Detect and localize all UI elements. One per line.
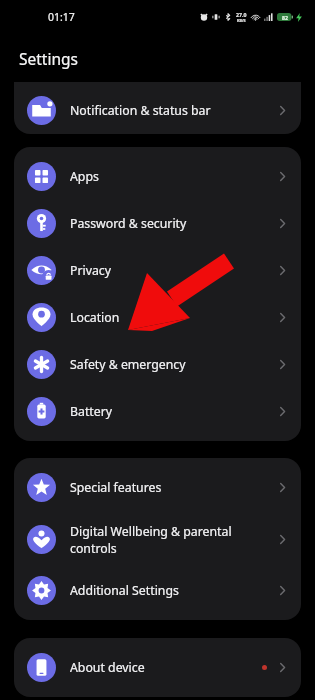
button[interactable]: Notification & status bar — [14, 87, 301, 134]
staticText: Battery — [70, 403, 113, 420]
staticText: 27.0 — [236, 11, 247, 18]
button[interactable]: Safety & emergency — [14, 341, 301, 388]
staticText: Safety & emergency — [70, 356, 186, 373]
button[interactable]: Location — [14, 294, 301, 341]
staticText: Digital Wellbeing & parental controls — [70, 523, 232, 556]
button[interactable]: Additional Settings — [14, 567, 301, 614]
staticText: 01:17 — [48, 10, 75, 24]
button[interactable]: Password & security — [14, 200, 301, 247]
button[interactable]: Privacy — [14, 247, 301, 294]
staticText: Settings — [19, 48, 78, 69]
button[interactable]: About device — [14, 644, 301, 691]
staticText: Special features — [70, 479, 162, 496]
staticText: Location — [70, 309, 120, 326]
staticText: Notification & status bar — [70, 102, 211, 119]
staticText: KB/S — [237, 18, 246, 23]
staticText: Password & security — [70, 215, 187, 232]
staticText: About device — [70, 659, 145, 676]
button[interactable]: Battery — [14, 388, 301, 435]
button[interactable]: Apps — [14, 153, 301, 200]
button[interactable]: Special features — [14, 464, 301, 511]
staticText: Apps — [70, 168, 99, 185]
other: Annotation arrow — [0, 0, 315, 700]
staticText: 82 — [282, 14, 288, 21]
button[interactable]: Digital Wellbeing & parental controls — [14, 511, 301, 567]
staticText: Privacy — [70, 262, 112, 279]
staticText: Additional Settings — [70, 582, 179, 599]
